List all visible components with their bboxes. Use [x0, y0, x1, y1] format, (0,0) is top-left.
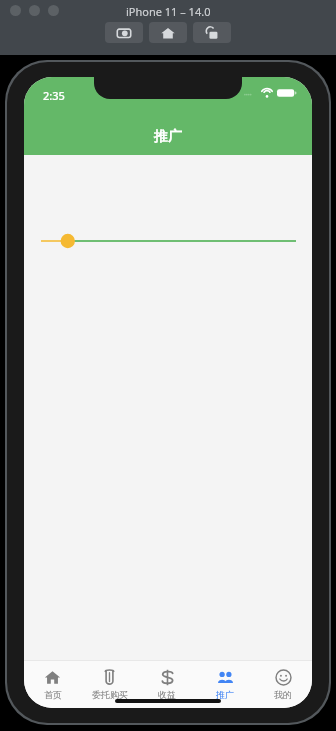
staticText: 委托购买: [92, 689, 128, 700]
staticText: 我的: [274, 689, 292, 700]
button[interactable]: 委托购买: [81, 660, 138, 708]
staticText: 首页: [44, 689, 62, 700]
button[interactable]: Simulator control: [149, 22, 187, 43]
staticText: 推广: [154, 128, 182, 146]
button[interactable]: Simulator control: [105, 22, 143, 43]
button[interactable]: 我的: [254, 660, 312, 708]
staticText: 收益: [158, 689, 176, 700]
button[interactable]: 首页: [24, 660, 81, 708]
staticText: 推广: [216, 689, 234, 700]
button[interactable]: 推广: [196, 660, 254, 708]
staticText: iPhone 11 – 14.0: [126, 4, 211, 19]
button[interactable]: 收益: [138, 660, 196, 708]
button[interactable]: Simulator control: [193, 22, 231, 43]
staticText: 2:35: [43, 88, 65, 103]
button[interactable]: Slider: [24, 229, 312, 253]
